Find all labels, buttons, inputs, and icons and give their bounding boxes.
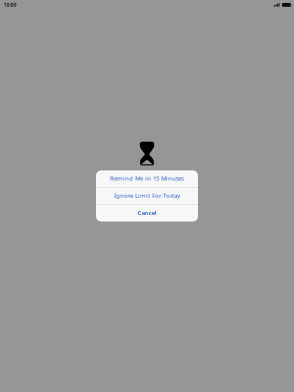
staticText: Cancel: [137, 209, 156, 217]
staticText: 10:00: [3, 1, 16, 8]
button[interactable]: Ignore Limit For Today: [96, 188, 198, 204]
button[interactable]: Remind Me in 15 Minutes: [96, 170, 198, 187]
staticText: Remind Me in 15 Minutes: [110, 174, 184, 182]
button[interactable]: Cancel: [96, 205, 198, 221]
staticText: Ignore Limit For Today: [114, 191, 180, 200]
